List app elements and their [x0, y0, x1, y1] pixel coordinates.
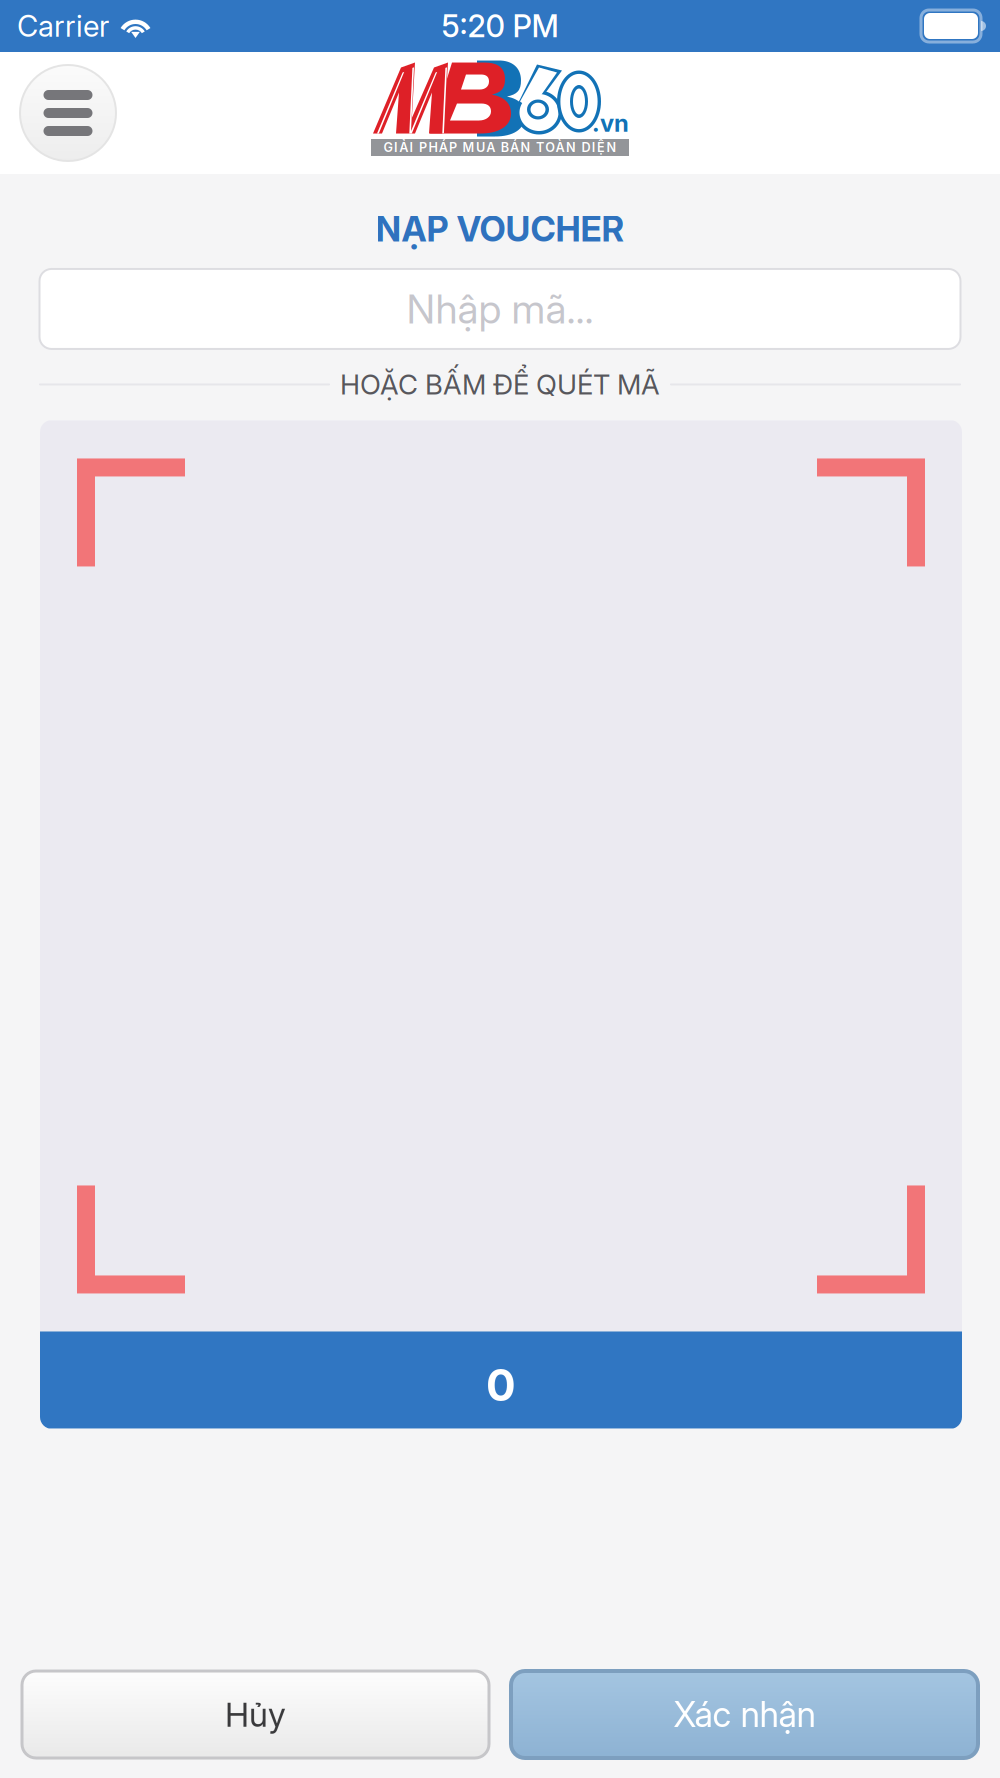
staticText: NẠP VOUCHER	[375, 208, 624, 250]
button[interactable]: Menu	[20, 65, 116, 161]
staticText: Carrier	[17, 8, 109, 44]
staticText: Hủy	[225, 1694, 286, 1735]
staticText: Nhập mã...	[406, 285, 593, 333]
staticText: GIẢI PHÁP MUA BÁN TOÀN DIỆN	[384, 140, 616, 155]
staticText: Xác nhận	[673, 1693, 815, 1735]
staticText: 5:20 PM	[441, 7, 558, 44]
staticText: HOẶC BẤM ĐỂ QUÉT MÃ	[340, 368, 660, 401]
staticText: .vn	[592, 108, 629, 137]
button[interactable]: Hủy	[22, 1671, 489, 1758]
staticText: 0	[486, 1358, 516, 1411]
button[interactable]: Xác nhận	[511, 1671, 978, 1758]
